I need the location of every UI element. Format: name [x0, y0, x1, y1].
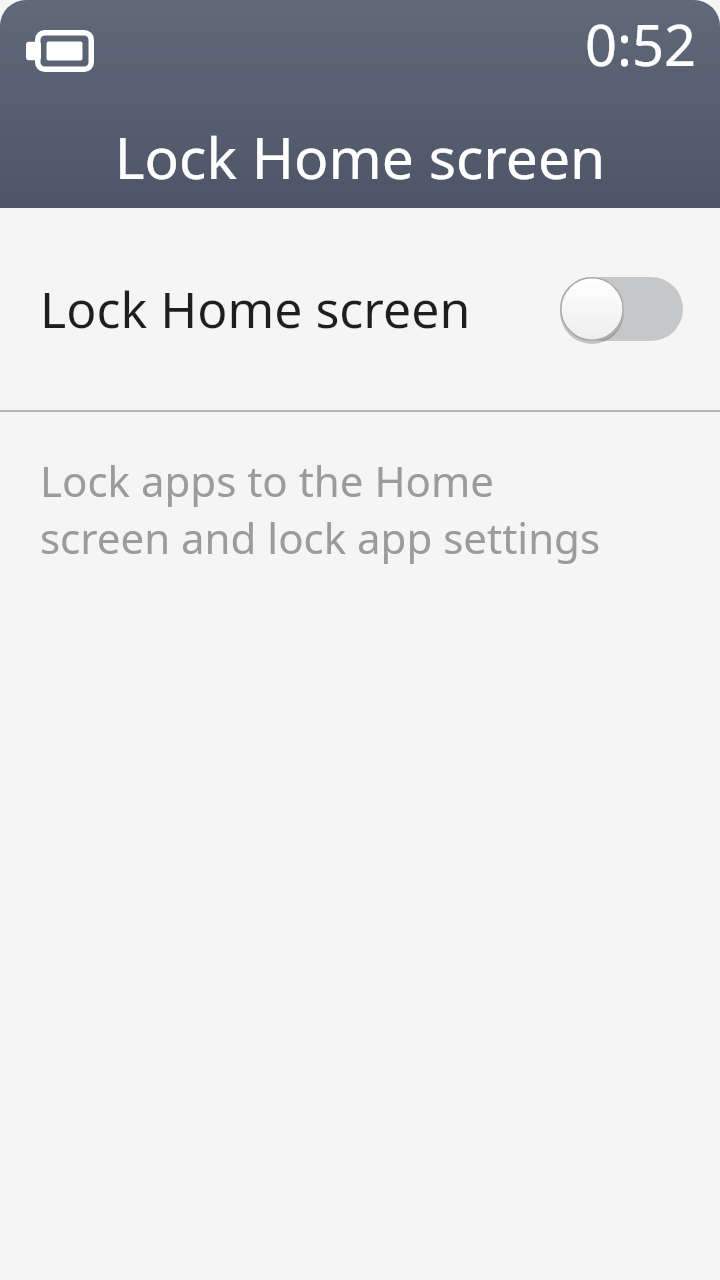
staticText: Lock Home screen — [40, 275, 548, 343]
staticText: Lock apps to the Home screen and lock ap… — [40, 452, 696, 566]
button[interactable]: Lock Home screen toggle, off — [560, 275, 683, 343]
other: Battery — [26, 28, 94, 74]
staticText: 0:52 — [584, 6, 696, 82]
staticText: Lock Home screen — [16, 118, 704, 196]
button[interactable]: Lock Home screen — [0, 208, 720, 410]
